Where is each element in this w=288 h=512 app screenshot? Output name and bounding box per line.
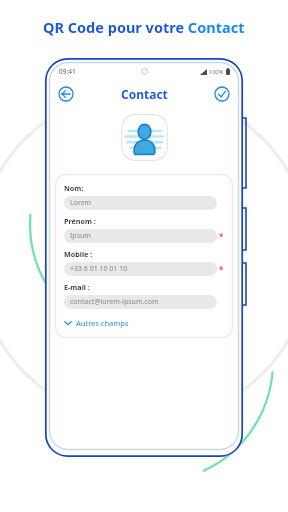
staticText: 100%: [209, 68, 224, 75]
button[interactable]: +33 6 01 10 01 10: [64, 262, 217, 276]
button[interactable]: contact@lorem-ipsum.com: [64, 295, 217, 309]
staticText: QR Code pour votre Contact: [43, 17, 245, 37]
staticText: Ipsum: [70, 231, 91, 241]
staticText: contact@lorem-ipsum.com: [70, 297, 159, 307]
button[interactable]: Validate: [213, 85, 231, 103]
staticText: Autres champs: [76, 318, 129, 328]
staticText: Prénom :: [64, 216, 96, 226]
button[interactable]: Lorem: [64, 196, 217, 210]
button[interactable]: Back: [57, 85, 75, 103]
staticText: +33 6 01 10 01 10: [70, 264, 128, 274]
staticText: Nom:: [64, 183, 84, 193]
button[interactable]: Ipsum: [64, 229, 217, 243]
button[interactable]: Contact photo: [121, 114, 168, 161]
staticText: *: [219, 264, 224, 275]
staticText: *: [219, 231, 224, 242]
button[interactable]: Autres champs: [64, 317, 224, 329]
staticText: Contact: [121, 86, 168, 102]
staticText: E-mail :: [64, 282, 90, 292]
staticText: Mobile :: [64, 249, 93, 259]
staticText: Lorem: [70, 198, 92, 208]
staticText: 09:41: [59, 67, 76, 76]
